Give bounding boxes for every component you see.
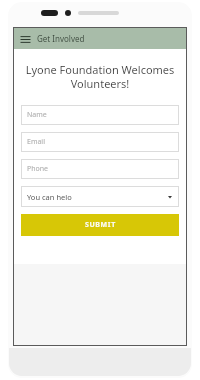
button[interactable]: Phone <box>21 159 179 179</box>
staticText: SUBMIT <box>85 220 116 230</box>
staticText: Lyone Foundation Welcomes Volunteers! <box>21 62 179 91</box>
staticText: Get Involved <box>37 33 85 44</box>
button[interactable]: You can helo <box>21 186 179 207</box>
staticText: Name <box>27 110 47 120</box>
button[interactable]: Name <box>21 105 179 125</box>
staticText: Email <box>27 137 45 147</box>
button[interactable]: Open navigation menu <box>18 32 32 46</box>
staticText: Phone <box>27 164 49 174</box>
staticText: You can helo <box>27 192 72 202</box>
button[interactable]: SUBMIT <box>21 214 179 236</box>
button[interactable]: Email <box>21 132 179 152</box>
